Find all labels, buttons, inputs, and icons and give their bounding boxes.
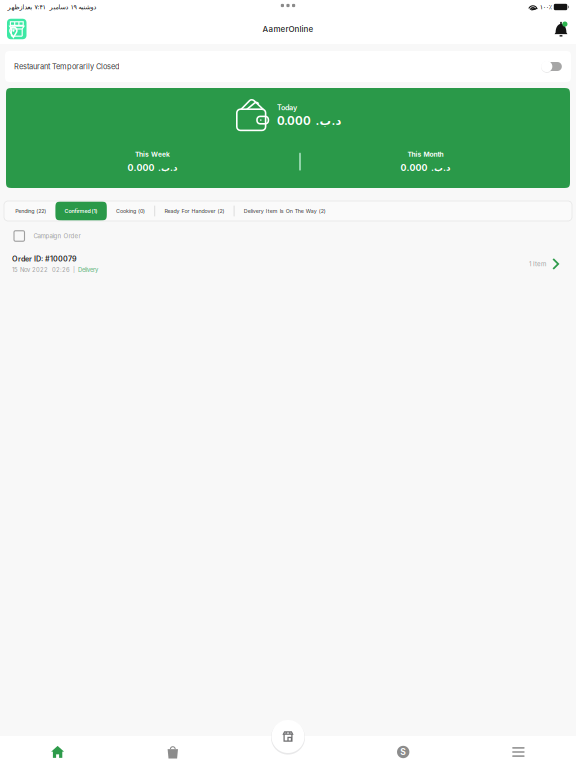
button[interactable]: Campaign Order	[0, 226, 576, 246]
staticText: 1 Item	[529, 260, 546, 268]
button[interactable]: Order ID: #100079	[0, 250, 576, 278]
button[interactable]: Store	[230, 736, 346, 768]
staticText: د.ب.	[315, 114, 341, 128]
staticText: د.ب.	[430, 162, 450, 173]
button[interactable]: Cooking (0)	[107, 201, 154, 220]
staticText: AamerOnline	[262, 24, 313, 34]
button[interactable]: Wallet	[346, 736, 461, 768]
button[interactable]: Pending (22)	[6, 201, 55, 220]
staticText: Order ID: #100079	[12, 255, 77, 263]
staticText: Delivery	[78, 266, 98, 273]
staticText: 0.000	[127, 162, 154, 173]
staticText: Cooking (0)	[116, 208, 145, 214]
button[interactable]: Orders	[115, 736, 230, 768]
button[interactable]: Restaurant Temporarily Closed	[541, 60, 562, 72]
staticText: S	[400, 747, 406, 757]
staticText: Confirmed (1)	[65, 208, 98, 214]
staticText: This Week	[135, 150, 170, 158]
button[interactable]: Confirmed (1)	[55, 201, 107, 220]
staticText: Restaurant Temporarily Closed	[14, 62, 120, 71]
button[interactable]: Store profile	[7, 19, 26, 39]
staticText: 0.000	[400, 162, 427, 173]
staticText: |	[73, 266, 75, 273]
staticText: 15 Nov 2022 02:26	[12, 266, 70, 273]
staticText: دوشنبه ۱۹ دسامبر ۷:۴۱ بعدازظهر	[7, 3, 96, 11]
staticText: Delivery Item Is On The Way (2)	[244, 208, 326, 214]
staticText: This Month	[407, 150, 443, 158]
button[interactable]: Ready For Handover (2)	[155, 201, 234, 220]
staticText: ۱۰۰٪	[540, 3, 552, 11]
staticText: 0.000	[277, 114, 311, 128]
staticText: Campaign Order	[33, 232, 80, 240]
button[interactable]: More	[461, 736, 576, 768]
button[interactable]: Delivery Item Is On The Way (2)	[235, 201, 335, 220]
button[interactable]: Notifications	[553, 21, 569, 37]
staticText: Pending (22)	[15, 208, 46, 214]
staticText: د.ب.	[157, 162, 177, 173]
staticText: Ready For Handover (2)	[164, 208, 224, 214]
button[interactable]: Home	[0, 736, 115, 768]
button[interactable]: Store	[270, 717, 306, 755]
staticText: Today	[277, 103, 297, 112]
